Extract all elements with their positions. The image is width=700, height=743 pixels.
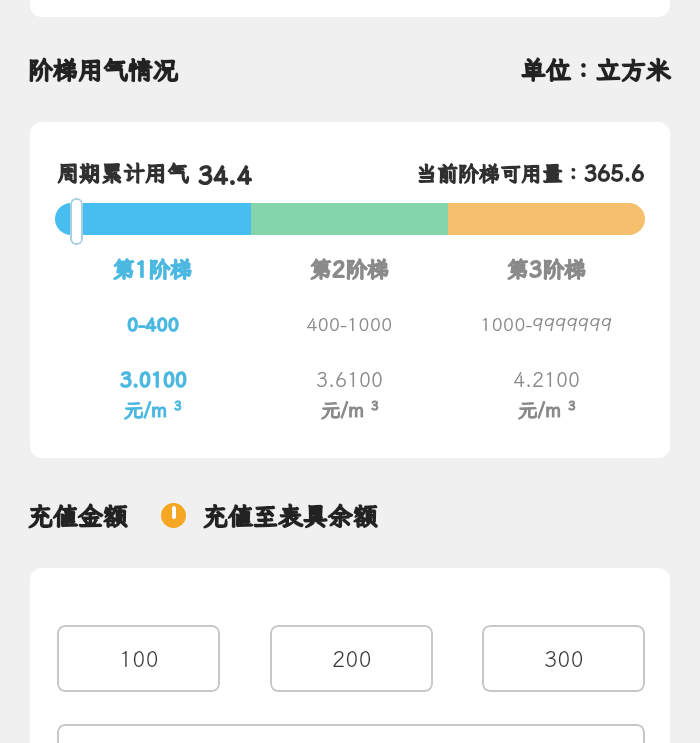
staticText: 第2阶梯 <box>310 254 390 283</box>
button[interactable]: 100 <box>57 625 220 692</box>
staticText: 充值至表具余额 <box>203 499 379 532</box>
staticText: 300 <box>544 644 584 673</box>
staticText: 周期累计用气 <box>57 158 190 187</box>
staticText: 周期累计用气 <box>57 158 190 187</box>
staticText: 阶梯用气情况 <box>28 53 179 86</box>
staticText: 34.4 <box>198 158 252 191</box>
staticText: 元/m 3 <box>124 396 182 422</box>
staticText: 元/m 3 <box>518 396 576 422</box>
staticText: 单位：立方米 <box>521 53 672 86</box>
staticText: 400-1000 <box>306 311 393 336</box>
staticText: 34.4 <box>198 158 252 191</box>
staticText: 4.2100 <box>513 366 580 392</box>
staticText: 3.0100 <box>120 366 187 392</box>
staticText: 当前阶梯可用量：365.6 <box>416 158 645 187</box>
staticText: 第1阶梯 <box>113 254 193 283</box>
staticText: 3.0100 <box>120 366 187 392</box>
staticText: 当前阶梯可用量：365.6 <box>416 158 645 187</box>
staticText: 200 <box>332 644 372 673</box>
staticText: 0-400 <box>127 311 180 336</box>
button[interactable] <box>57 724 645 743</box>
staticText: 阶梯用气情况 <box>28 53 179 86</box>
staticText: 元/m 3 <box>124 396 182 422</box>
staticText: 元/m 3 <box>321 396 379 422</box>
staticText: 3.6100 <box>316 366 383 392</box>
staticText: 第1阶梯 <box>113 254 193 283</box>
staticText: 单位：立方米 <box>521 53 672 86</box>
staticText: 充值金额 <box>28 499 129 532</box>
staticText: 第3阶梯 <box>507 254 587 283</box>
button[interactable]: 200 <box>270 625 433 692</box>
staticText: 第3阶梯 <box>507 254 587 283</box>
staticText: 元/m 3 <box>518 396 576 422</box>
staticText: 1000-9999999 <box>480 311 613 336</box>
staticText: 100 <box>119 644 159 673</box>
staticText: 元/m 3 <box>321 396 379 422</box>
staticText: 第2阶梯 <box>310 254 390 283</box>
button[interactable]: 300 <box>482 625 645 692</box>
staticText: 0-400 <box>127 311 180 336</box>
staticText: 充值至表具余额 <box>203 499 379 532</box>
button[interactable] <box>161 503 186 528</box>
staticText: 充值金额 <box>28 499 129 532</box>
